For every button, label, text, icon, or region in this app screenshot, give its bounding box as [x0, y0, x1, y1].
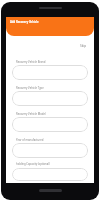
staticText: Recovery Vehicle Model	[16, 112, 46, 116]
staticText: Year of manufactured	[16, 138, 44, 142]
button[interactable]: Add Recovery Vehicle	[6, 17, 94, 36]
button[interactable]	[12, 91, 88, 106]
button[interactable]	[12, 65, 88, 80]
button[interactable]	[12, 168, 88, 181]
button[interactable]: Skip	[78, 42, 89, 50]
button[interactable]	[12, 143, 88, 158]
staticText: Add Recovery Vehicle	[10, 20, 39, 24]
staticText: Recovery Vehicle Type	[16, 86, 44, 90]
staticText: Skip	[80, 44, 87, 48]
staticText: Recovery Vehicle Brand	[16, 60, 46, 64]
staticText: holding Capacity (optional)	[16, 162, 50, 166]
button[interactable]	[12, 117, 88, 132]
